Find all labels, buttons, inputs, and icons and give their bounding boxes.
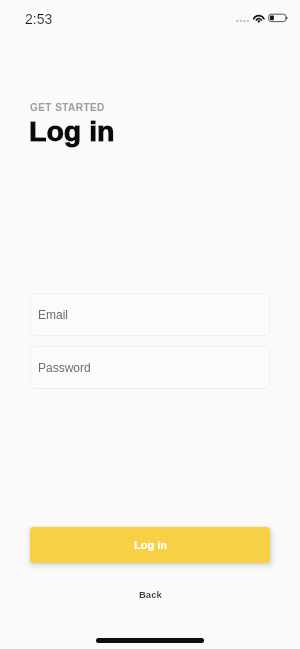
staticText: Log in bbox=[29, 115, 115, 147]
staticText: 2:53 bbox=[25, 11, 53, 27]
button[interactable]: Password bbox=[30, 346, 270, 389]
button[interactable]: Email bbox=[30, 293, 270, 336]
button[interactable]: Log in bbox=[30, 527, 270, 563]
other: Cellular signal, Wi-Fi and battery statu… bbox=[0, 0, 300, 34]
button[interactable]: Back bbox=[0, 583, 300, 605]
staticText: Back bbox=[139, 589, 162, 600]
staticText: GET STARTED bbox=[30, 102, 105, 113]
staticText: Email bbox=[38, 308, 69, 321]
staticText: Log in bbox=[134, 539, 167, 551]
staticText: Password bbox=[38, 361, 91, 374]
